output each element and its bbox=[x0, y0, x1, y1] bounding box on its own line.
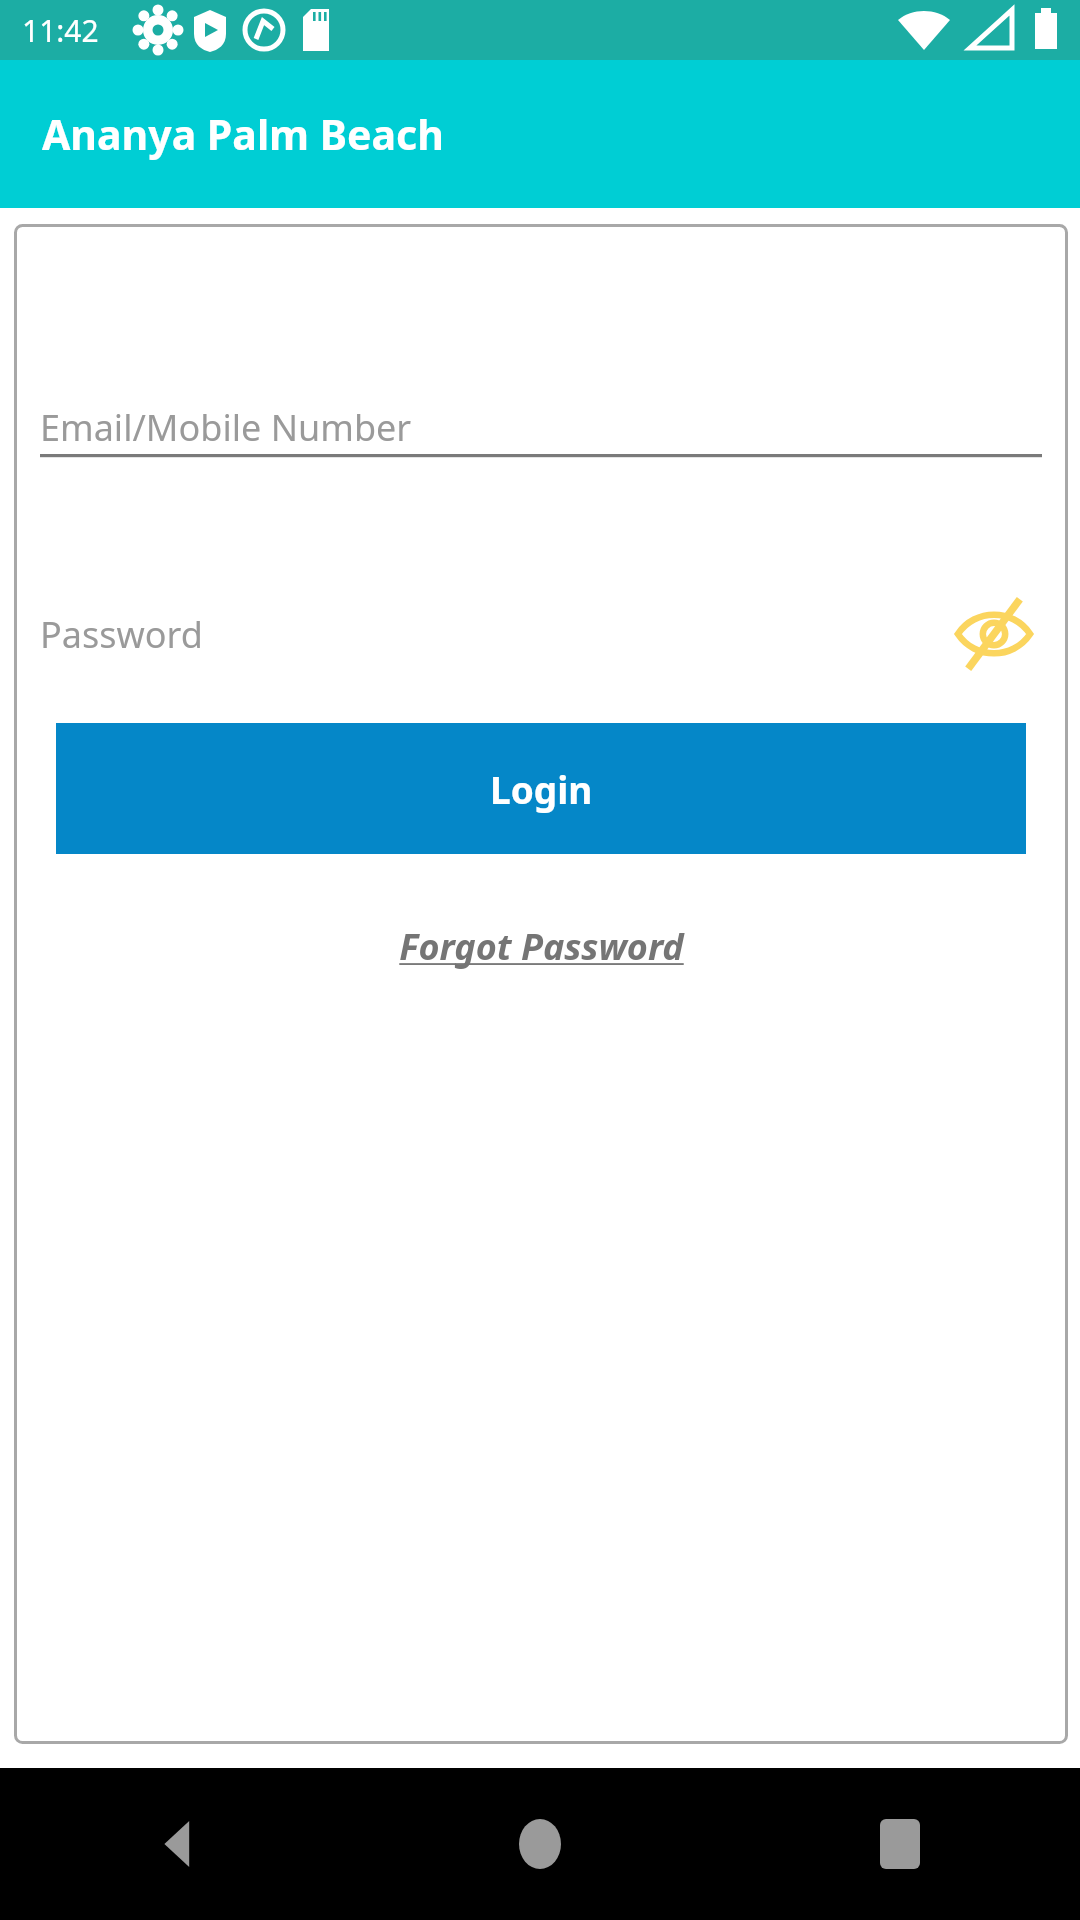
staticText: Login bbox=[490, 764, 593, 814]
button[interactable]: Back bbox=[0, 1768, 360, 1920]
staticText: Password bbox=[40, 610, 203, 659]
button[interactable]: Login bbox=[56, 723, 1026, 854]
staticText: Forgot Password bbox=[399, 922, 684, 971]
staticText: 11:42 bbox=[22, 10, 99, 51]
button[interactable]: Forgot Password bbox=[379, 916, 704, 977]
button[interactable]: Password bbox=[40, 603, 1042, 665]
button[interactable]: Show password bbox=[946, 603, 1042, 665]
button[interactable]: Email/Mobile Number bbox=[40, 396, 1042, 458]
staticText: Email/Mobile Number bbox=[40, 403, 412, 452]
staticText: Ananya Palm Beach bbox=[42, 106, 444, 162]
button[interactable]: Home bbox=[360, 1768, 720, 1920]
button[interactable]: Recent apps bbox=[720, 1768, 1080, 1920]
